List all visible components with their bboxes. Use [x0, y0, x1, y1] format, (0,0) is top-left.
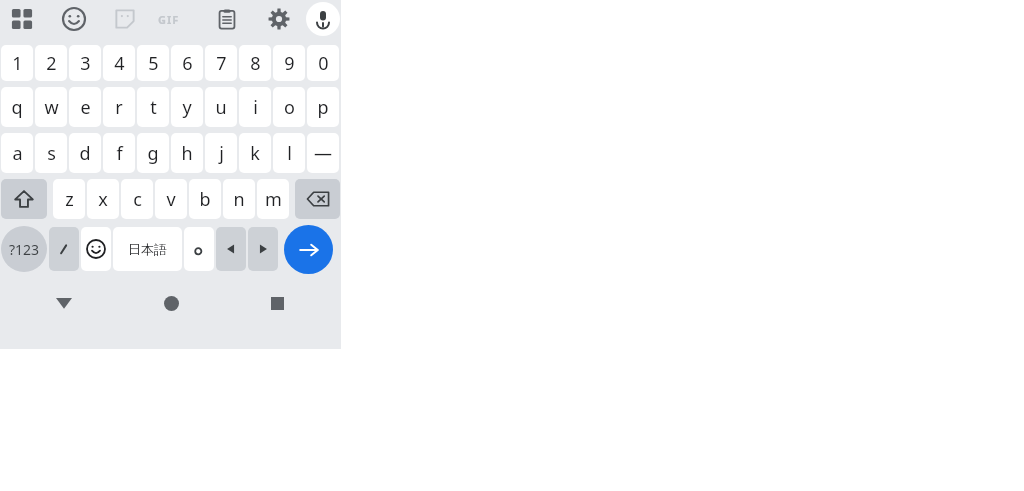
staticText: t	[150, 95, 157, 120]
button[interactable]: Apps	[4, 0, 40, 38]
button[interactable]: Recents	[255, 281, 299, 325]
staticText: 1	[12, 51, 23, 76]
button[interactable]: i	[239, 87, 271, 127]
staticText: 日本語	[128, 241, 167, 257]
staticText: 4	[114, 51, 125, 76]
staticText: n	[233, 187, 245, 212]
button[interactable]: GIF	[157, 0, 181, 38]
staticText: 2	[46, 51, 57, 76]
button[interactable]: x	[87, 179, 119, 219]
button[interactable]: u	[205, 87, 237, 127]
staticText: a	[12, 141, 23, 166]
button[interactable]: Period	[184, 227, 214, 271]
staticText: q	[11, 95, 23, 120]
button[interactable]: p	[307, 87, 339, 127]
staticText: 9	[284, 51, 295, 76]
button[interactable]: 1	[1, 45, 33, 81]
staticText: d	[79, 141, 91, 166]
staticText: v	[166, 187, 176, 212]
staticText: GIF	[158, 12, 180, 27]
staticText: m	[265, 187, 282, 212]
button[interactable]: g	[137, 133, 169, 173]
staticText: 5	[148, 51, 159, 76]
button[interactable]: y	[171, 87, 203, 127]
button[interactable]: d	[69, 133, 101, 173]
button[interactable]: t	[137, 87, 169, 127]
button[interactable]: 2	[35, 45, 67, 81]
button[interactable]: 3	[69, 45, 101, 81]
button[interactable]: —	[307, 133, 339, 173]
button[interactable]: ?123	[1, 226, 47, 272]
button[interactable]: e	[69, 87, 101, 127]
button[interactable]: a	[1, 133, 33, 173]
button[interactable]: 9	[273, 45, 305, 81]
button[interactable]: c	[121, 179, 153, 219]
staticText: f	[116, 141, 123, 166]
button[interactable]: h	[171, 133, 203, 173]
button[interactable]: f	[103, 133, 135, 173]
staticText: p	[317, 95, 329, 120]
staticText: 3	[80, 51, 91, 76]
staticText: w	[44, 95, 59, 120]
button[interactable]: Home	[149, 281, 193, 325]
button[interactable]: Cursor right	[248, 227, 278, 271]
staticText: k	[250, 141, 260, 166]
button[interactable]: Emoji	[81, 227, 111, 271]
button[interactable]: Clipboard	[209, 0, 245, 38]
staticText: s	[47, 141, 56, 166]
staticText: x	[98, 187, 108, 212]
button[interactable]: o	[273, 87, 305, 127]
button[interactable]: l	[273, 133, 305, 173]
staticText: 6	[182, 51, 193, 76]
button[interactable]: v	[155, 179, 187, 219]
button[interactable]: 5	[137, 45, 169, 81]
button[interactable]: k	[239, 133, 271, 173]
button[interactable]: Settings	[261, 0, 297, 38]
button[interactable]: Enter	[284, 225, 333, 274]
button[interactable]: Backspace	[295, 179, 340, 219]
staticText: 0	[318, 51, 329, 76]
button[interactable]: 4	[103, 45, 135, 81]
staticText: e	[80, 95, 91, 120]
button[interactable]: j	[205, 133, 237, 173]
button[interactable]: w	[35, 87, 67, 127]
staticText: r	[115, 95, 123, 120]
staticText: 8	[250, 51, 261, 76]
button[interactable]: 6	[171, 45, 203, 81]
staticText: j	[219, 141, 224, 166]
button[interactable]: 0	[307, 45, 339, 81]
staticText: o	[284, 95, 295, 120]
button[interactable]: q	[1, 87, 33, 127]
staticText: 7	[216, 51, 227, 76]
button[interactable]: s	[35, 133, 67, 173]
staticText: l	[287, 141, 292, 166]
button[interactable]: 7	[205, 45, 237, 81]
button[interactable]: r	[103, 87, 135, 127]
staticText: ?123	[9, 240, 40, 259]
button[interactable]: z	[53, 179, 85, 219]
button[interactable]: n	[223, 179, 255, 219]
button[interactable]: Emoji	[56, 0, 92, 38]
button[interactable]: Back	[42, 281, 86, 325]
staticText: y	[182, 95, 192, 120]
button[interactable]: GIF	[157, 0, 193, 38]
staticText: g	[147, 141, 159, 166]
staticText: z	[65, 187, 74, 212]
button[interactable]: 日本語	[113, 227, 182, 271]
button[interactable]: Stickers	[107, 0, 143, 38]
button[interactable]: 8	[239, 45, 271, 81]
staticText: h	[181, 141, 193, 166]
button[interactable]: Comma	[49, 227, 79, 271]
staticText: —	[314, 141, 332, 166]
button[interactable]: Voice input	[306, 2, 340, 36]
staticText: c	[133, 187, 142, 212]
staticText: i	[253, 95, 258, 120]
button[interactable]: Shift	[1, 179, 47, 219]
button[interactable]: b	[189, 179, 221, 219]
staticText: b	[199, 187, 211, 212]
button[interactable]: Cursor left	[216, 227, 246, 271]
staticText: u	[215, 95, 227, 120]
button[interactable]: m	[257, 179, 289, 219]
